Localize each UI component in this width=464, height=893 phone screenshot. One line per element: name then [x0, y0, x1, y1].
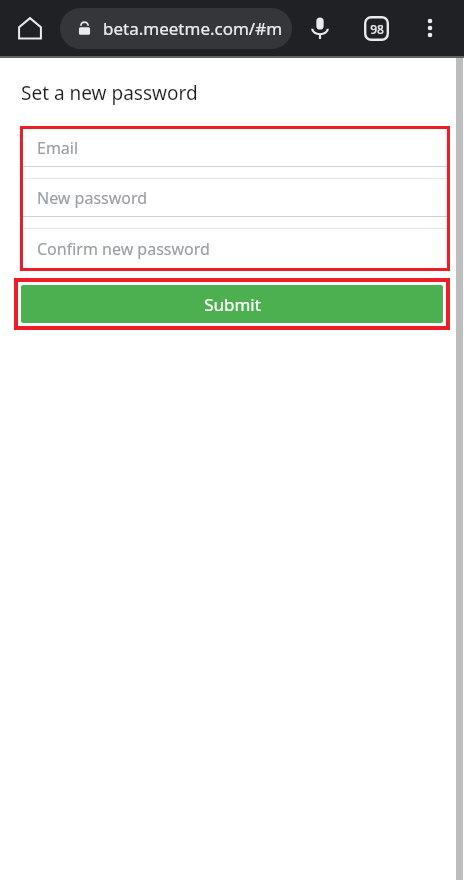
staticText: Confirm new password: [37, 238, 210, 260]
button[interactable]: beta.meetme.com/#m: [60, 8, 292, 49]
button[interactable]: More options: [404, 0, 456, 56]
staticText: 98: [370, 21, 384, 37]
button[interactable]: Email: [23, 129, 447, 179]
staticText: New password: [37, 187, 148, 209]
button[interactable]: Tabs: 98: [348, 0, 404, 56]
button[interactable]: Home: [0, 0, 60, 56]
button[interactable]: Submit: [21, 285, 443, 323]
staticText: beta.meetme.com/#m: [103, 17, 283, 40]
staticText: Email: [37, 137, 79, 159]
staticText: Set a new password: [21, 80, 198, 106]
button[interactable]: New password: [23, 179, 447, 229]
staticText: Submit: [204, 293, 261, 316]
button[interactable]: Confirm new password: [23, 229, 447, 268]
button[interactable]: Voice search: [292, 0, 348, 56]
